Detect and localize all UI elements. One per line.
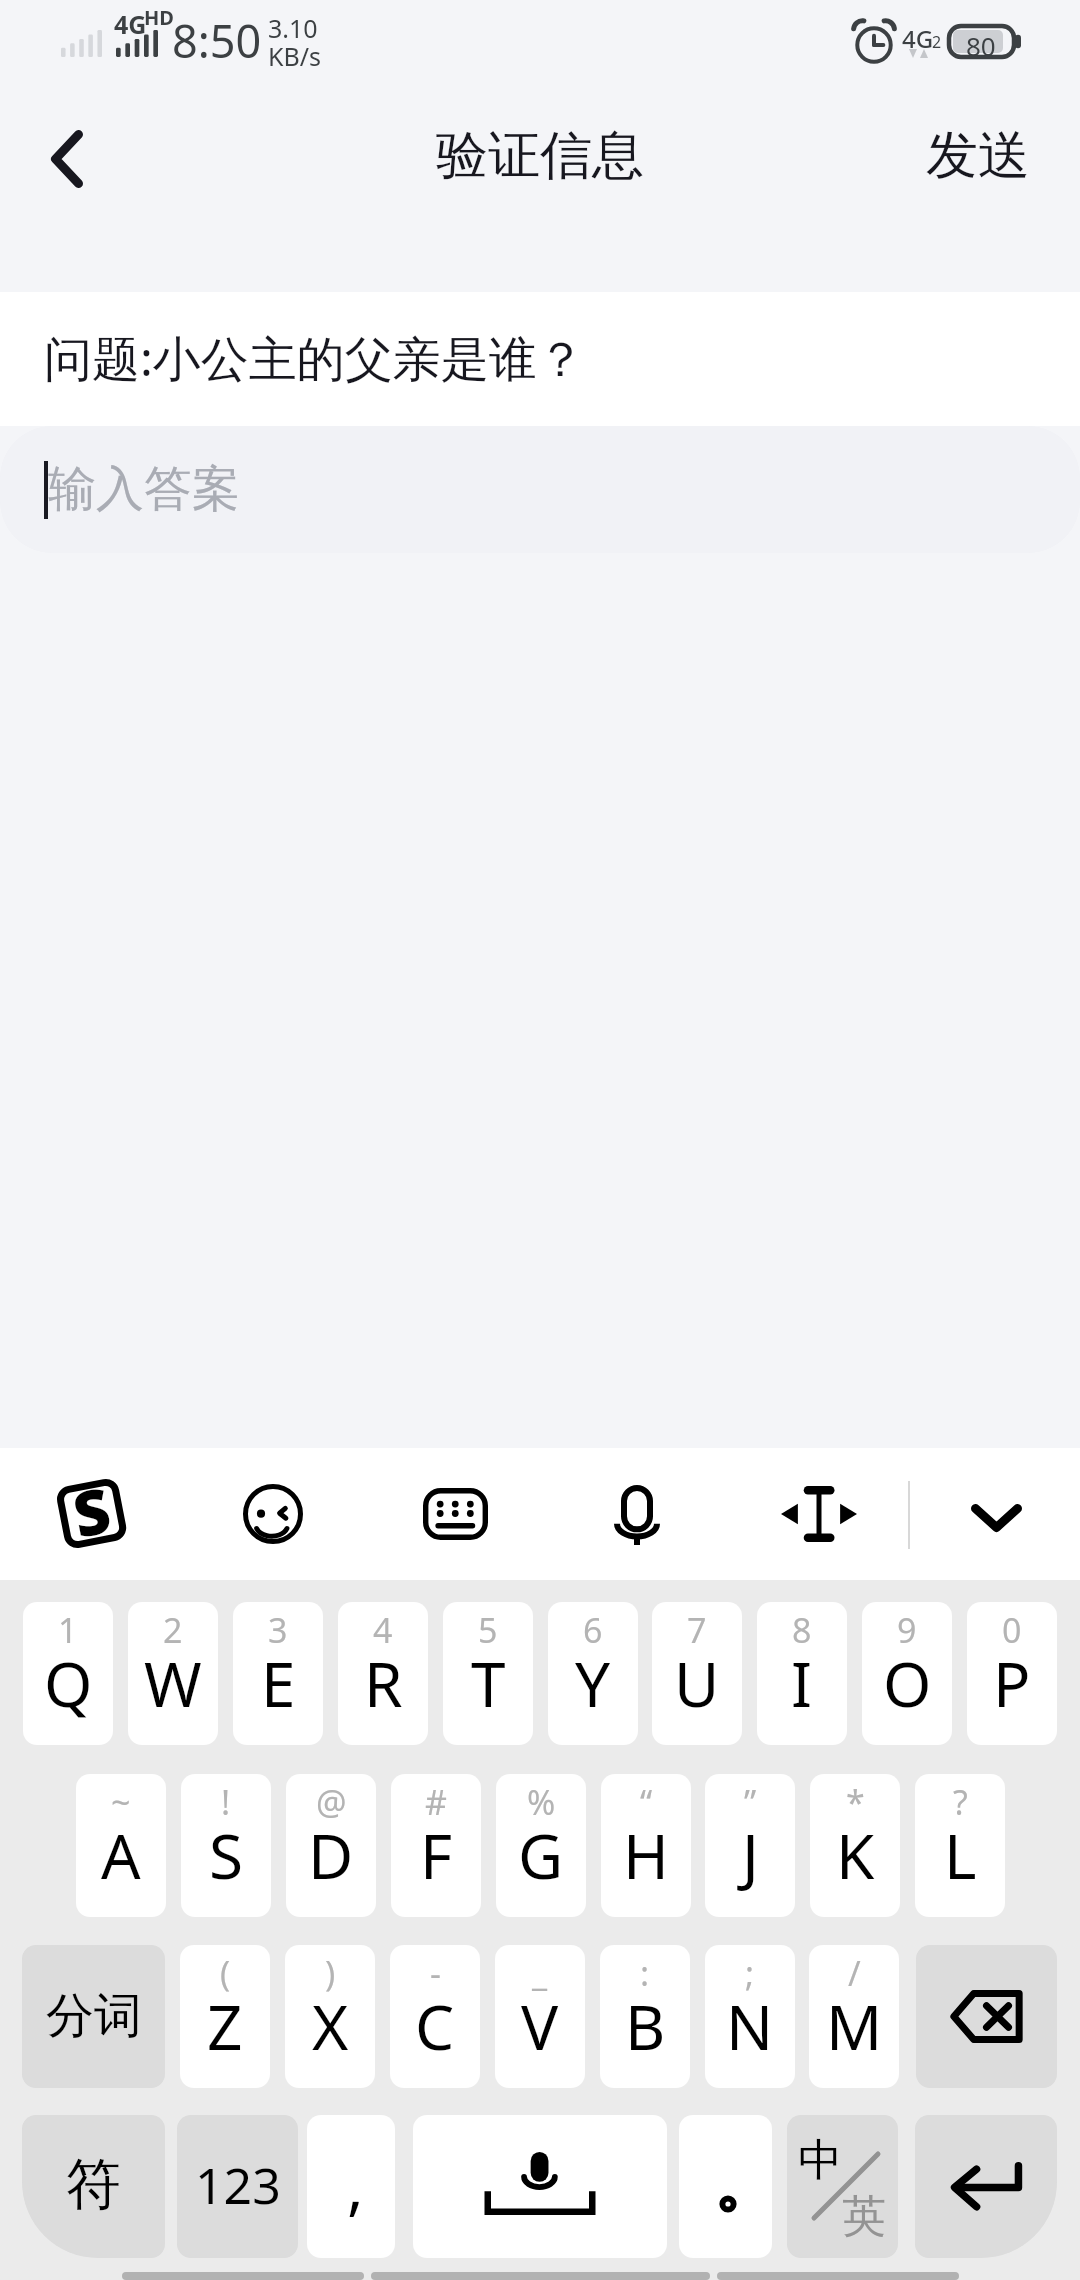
- button[interactable]: :: [600, 1945, 690, 2088]
- staticText: 发送: [926, 123, 1030, 189]
- staticText: 2: [932, 31, 942, 53]
- staticText: B: [625, 1984, 666, 2068]
- staticText: 1: [58, 1607, 78, 1653]
- staticText: L: [944, 1813, 977, 1897]
- staticText: *: [846, 1779, 865, 1825]
- button[interactable]: Hide keyboard: [948, 1466, 1044, 1562]
- staticText: 分词: [46, 1986, 142, 2046]
- button[interactable]: /: [809, 1945, 899, 2088]
- button[interactable]: #: [391, 1774, 481, 1917]
- staticText: K: [836, 1813, 875, 1897]
- staticText: 8:50: [172, 10, 262, 71]
- button[interactable]: [413, 2115, 667, 2258]
- button[interactable]: ~: [76, 1774, 166, 1917]
- staticText: 0: [1002, 1607, 1022, 1653]
- button[interactable]: ”: [705, 1774, 795, 1917]
- staticText: J: [742, 1813, 759, 1897]
- button[interactable]: %: [496, 1774, 586, 1917]
- button[interactable]: !: [181, 1774, 271, 1917]
- staticText: ;: [745, 1950, 755, 1996]
- button[interactable]: 分词: [22, 1945, 165, 2088]
- button[interactable]: [916, 1945, 1057, 2088]
- button[interactable]: @: [286, 1774, 376, 1917]
- button[interactable]: Sogou input method: [43, 1465, 139, 1561]
- staticText: 输入答案: [48, 459, 240, 519]
- staticText: N: [726, 1984, 774, 2068]
- staticText: @: [316, 1779, 347, 1825]
- button[interactable]: -: [390, 1945, 480, 2088]
- button[interactable]: 0: [967, 1602, 1057, 1745]
- staticText: Y: [575, 1641, 611, 1725]
- staticText: ,: [347, 2143, 364, 2227]
- staticText: !: [221, 1779, 231, 1825]
- button[interactable]: 6: [548, 1602, 638, 1745]
- staticText: E: [261, 1641, 296, 1725]
- button[interactable]: 符: [22, 2115, 165, 2258]
- staticText: _: [532, 1950, 548, 1996]
- button[interactable]: “: [601, 1774, 691, 1917]
- button[interactable]: 9: [862, 1602, 952, 1745]
- button[interactable]: [679, 2115, 772, 2258]
- staticText: H: [623, 1813, 669, 1897]
- staticText: I: [791, 1641, 813, 1725]
- staticText: :: [640, 1950, 650, 1996]
- staticText: -: [430, 1950, 441, 1996]
- staticText: %: [527, 1779, 556, 1825]
- staticText: /: [848, 1950, 861, 1996]
- staticText: “: [640, 1779, 653, 1825]
- button[interactable]: 123: [177, 2115, 298, 2258]
- button[interactable]: 输入答案: [0, 426, 1080, 553]
- button[interactable]: ): [285, 1945, 375, 2088]
- staticText: 123: [195, 2151, 281, 2219]
- staticText: S: [209, 1813, 244, 1897]
- button[interactable]: _: [495, 1945, 585, 2088]
- staticText: R: [364, 1641, 403, 1725]
- staticText: 2: [163, 1607, 183, 1653]
- button[interactable]: 中: [787, 2115, 898, 2258]
- button[interactable]: 5: [443, 1602, 533, 1745]
- staticText: 符: [66, 2150, 121, 2219]
- button[interactable]: Move cursor: [771, 1466, 867, 1562]
- button[interactable]: 7: [652, 1602, 742, 1745]
- staticText: 8: [792, 1607, 812, 1653]
- staticText: #: [425, 1779, 447, 1825]
- staticText: 英: [842, 2189, 886, 2244]
- staticText: T: [471, 1641, 506, 1725]
- button[interactable]: 3: [233, 1602, 323, 1745]
- staticText: P: [993, 1641, 1031, 1725]
- button[interactable]: (: [180, 1945, 270, 2088]
- button[interactable]: 1: [23, 1602, 113, 1745]
- staticText: M: [826, 1984, 883, 2068]
- button[interactable]: ?: [915, 1774, 1005, 1917]
- button[interactable]: 4: [338, 1602, 428, 1745]
- button[interactable]: 8: [757, 1602, 847, 1745]
- staticText: HD: [144, 4, 174, 31]
- staticText: S: [66, 1466, 117, 1556]
- staticText: 4G: [902, 22, 934, 55]
- staticText: ?: [953, 1779, 968, 1825]
- button[interactable]: [915, 2115, 1057, 2258]
- staticText: 5: [478, 1607, 498, 1653]
- staticText: 9: [897, 1607, 917, 1653]
- staticText: Z: [207, 1984, 243, 2068]
- button[interactable]: 2: [128, 1602, 218, 1745]
- staticText: C: [415, 1984, 455, 2068]
- button[interactable]: ,: [307, 2115, 395, 2258]
- button[interactable]: *: [810, 1774, 900, 1917]
- button[interactable]: Emoji: [225, 1466, 321, 1562]
- staticText: D: [308, 1813, 354, 1897]
- staticText: ): [325, 1950, 336, 1996]
- button[interactable]: ;: [705, 1945, 795, 2088]
- button[interactable]: Voice input: [589, 1466, 685, 1562]
- button[interactable]: Keyboard layout: [407, 1466, 503, 1562]
- staticText: 3: [268, 1607, 288, 1653]
- staticText: O: [883, 1641, 932, 1725]
- staticText: F: [420, 1813, 453, 1897]
- button[interactable]: 发送: [880, 94, 1080, 224]
- staticText: 7: [687, 1607, 707, 1653]
- staticText: 问题:小公主的父亲是谁？: [44, 325, 585, 391]
- staticText: W: [144, 1641, 202, 1725]
- staticText: 4: [373, 1607, 393, 1653]
- button[interactable]: Back: [0, 94, 146, 224]
- staticText: 4G: [114, 7, 147, 41]
